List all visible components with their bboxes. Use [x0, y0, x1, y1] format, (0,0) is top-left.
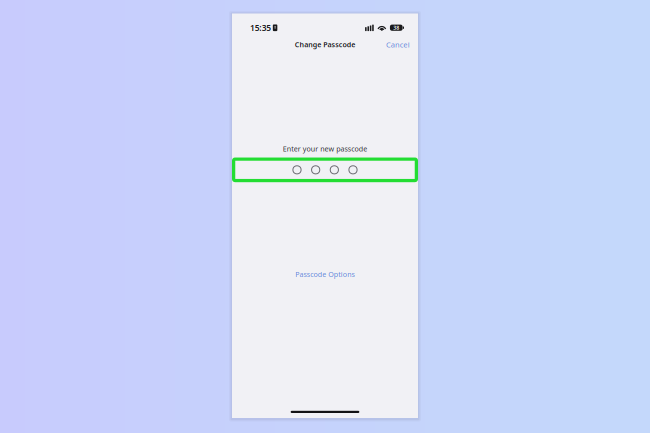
staticText: 15:35 — [286, 39, 349, 73]
staticText: Enter your new passcode — [384, 405, 637, 433]
